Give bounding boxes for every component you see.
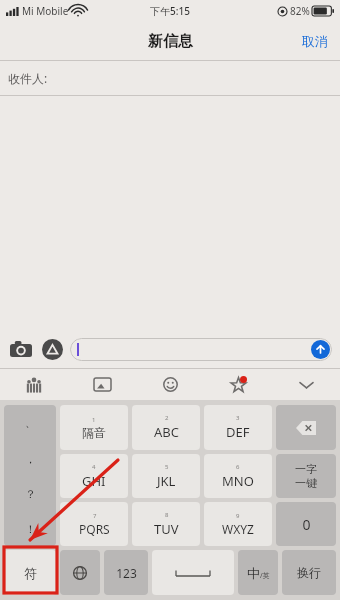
staticText: 一键 [295,476,317,490]
button[interactable]: Favorites [204,369,272,400]
button[interactable]: App Store [40,337,64,361]
button[interactable]: 取消 [290,27,340,55]
staticText: PQRS [79,521,110,537]
staticText: 1 [92,416,96,424]
button[interactable]: Send [70,338,332,361]
button[interactable]: 3 [204,405,272,450]
button[interactable]: Space [152,550,234,595]
staticText: 取消 [302,33,328,49]
staticText: ， [25,452,36,466]
staticText: GHI [82,472,106,490]
button[interactable]: 7 [60,502,128,546]
staticText: DEF [226,423,250,441]
staticText: TUV [154,520,179,538]
button[interactable]: Backspace [276,405,336,450]
staticText: 符 [24,565,37,581]
staticText: 0 [302,515,311,534]
button[interactable]: 1 [60,405,128,450]
staticText: Mi Mobile [22,4,69,18]
button[interactable]: 中 [238,550,278,595]
button[interactable]: ！ [4,511,56,546]
staticText: 5 [165,463,169,471]
staticText: 6 [236,463,240,471]
staticText: ！ [25,522,36,536]
button[interactable]: 6 [204,454,272,498]
staticText: ABC [154,423,179,441]
staticText: 一字 [295,462,317,476]
staticText: 中 [247,565,260,581]
button[interactable]: Animoji [0,369,68,400]
button[interactable]: 4 [60,454,128,498]
button[interactable]: ？ [4,476,56,511]
staticText: 收件人: [8,70,48,86]
button[interactable]: Collapse [272,369,340,400]
button[interactable]: ， [4,441,56,476]
button[interactable]: Photos [68,369,136,400]
button[interactable]: 0 [276,502,336,546]
button[interactable]: Camera [8,336,34,362]
button[interactable]: 一字 [276,454,336,498]
button[interactable]: 2 [132,405,200,450]
staticText: /英 [260,571,270,581]
staticText: 4 [92,463,96,471]
staticText: MNO [222,472,254,490]
button[interactable]: 收件人: [0,61,340,95]
button[interactable]: 123 [104,550,148,595]
staticText: 隔音 [82,425,106,440]
staticText: 7 [93,512,97,520]
staticText: 、 [25,416,36,430]
button[interactable]: 符 [4,550,56,595]
button[interactable]: 9 [204,502,272,546]
staticText: JKL [157,472,176,490]
staticText: 换行 [297,565,321,580]
staticText: 82% [290,4,310,18]
staticText: 2 [165,414,169,422]
button[interactable]: Emoji [136,369,204,400]
button[interactable]: Send [311,340,330,359]
button[interactable]: 换行 [282,550,336,595]
button[interactable]: 8 [132,502,200,546]
staticText: ？ [25,487,36,501]
staticText: WXYZ [222,521,254,537]
staticText: 3 [236,414,240,422]
button[interactable]: Switch keyboard [60,550,100,595]
button[interactable]: 5 [132,454,200,498]
staticText: 下午5:15 [150,4,190,18]
staticText: 8 [165,511,169,519]
staticText: 123 [116,565,137,581]
staticText: 新信息 [148,32,193,51]
staticText: 9 [236,512,240,520]
